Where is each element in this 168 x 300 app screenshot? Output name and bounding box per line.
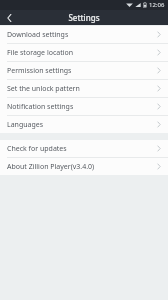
staticText: Download settings [7,30,157,40]
staticText: Notification settings [7,102,157,112]
staticText: Permission settings [7,66,157,76]
staticText: 12:06 [149,1,165,9]
staticText: Set the unlock pattern [7,84,157,94]
button[interactable]: Permission settings [0,62,168,79]
button[interactable]: Download settings [0,26,168,43]
staticText: Settings [68,12,100,23]
button[interactable]: File storage location [0,44,168,61]
staticText: File storage location [7,48,157,58]
staticText: Check for updates [7,144,157,154]
staticText: Languages [7,120,157,130]
button[interactable]: About Zillion Player(v3.4.0) [0,158,168,175]
button[interactable]: Check for updates [0,140,168,157]
button[interactable]: Set the unlock pattern [0,80,168,97]
staticText: About Zillion Player(v3.4.0) [7,162,157,172]
button[interactable]: Back [0,10,18,25]
button[interactable]: Languages [0,116,168,133]
button[interactable]: Notification settings [0,98,168,115]
